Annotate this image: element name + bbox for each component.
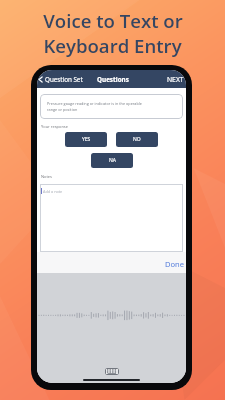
staticText: NA bbox=[109, 157, 116, 164]
staticText: YES bbox=[82, 136, 91, 143]
staticText: NO bbox=[133, 136, 141, 143]
button[interactable]: Question Set bbox=[37, 73, 85, 86]
staticText: NEXT bbox=[167, 75, 184, 84]
staticText: Add a note bbox=[43, 189, 63, 194]
staticText: Keyboard Entry bbox=[43, 33, 182, 58]
staticText: Questions bbox=[97, 75, 129, 84]
staticText: Done bbox=[165, 259, 184, 269]
button[interactable]: NEXT bbox=[165, 73, 186, 86]
button[interactable]: YES bbox=[65, 132, 107, 147]
staticText: Pressure gauge reading or indicator is i… bbox=[47, 101, 142, 112]
staticText: Question Set bbox=[45, 75, 83, 84]
button[interactable]: NO bbox=[116, 132, 158, 147]
button[interactable]: Done bbox=[161, 256, 186, 270]
staticText: Voice to Text or bbox=[43, 8, 183, 33]
staticText: Notes bbox=[41, 174, 52, 179]
button[interactable]: Keyboard bbox=[105, 368, 119, 375]
staticText: Your response bbox=[41, 124, 69, 129]
button[interactable]: NA bbox=[91, 153, 133, 168]
